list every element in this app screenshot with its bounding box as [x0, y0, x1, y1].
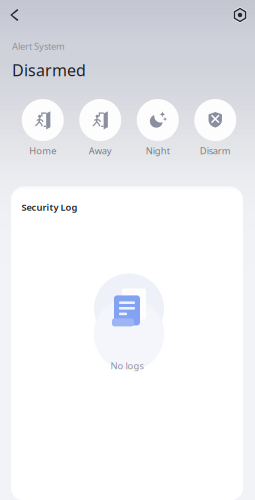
button[interactable]: Settings [225, 0, 255, 30]
button[interactable]: Home [14, 99, 71, 157]
staticText: Disarm [200, 144, 231, 157]
staticText: Alert System [12, 40, 65, 52]
staticText: Night [146, 144, 170, 157]
staticText: Away [89, 144, 112, 157]
button[interactable]: Away [71, 99, 129, 157]
staticText: Disarmed [12, 59, 86, 81]
staticText: Home [29, 144, 56, 157]
staticText: Security Log [21, 201, 77, 213]
staticText: No logs [110, 359, 143, 372]
button[interactable]: Night [129, 99, 186, 157]
button[interactable]: Disarm [186, 99, 244, 157]
button[interactable]: Back [0, 0, 29, 30]
